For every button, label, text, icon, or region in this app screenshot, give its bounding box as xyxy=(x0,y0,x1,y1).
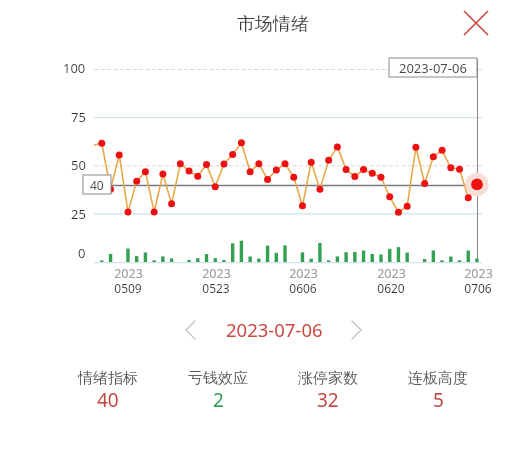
staticText: 2023 xyxy=(377,265,406,282)
button[interactable]: 2023-07-06 xyxy=(214,317,334,339)
button[interactable]: 连板高度 xyxy=(383,366,493,414)
staticText: 2023 xyxy=(114,265,143,282)
staticText: 0706 xyxy=(464,280,492,296)
staticText: 2023 xyxy=(202,265,231,282)
staticText: 2023-07-06 xyxy=(399,59,467,77)
staticText: 情绪指标 xyxy=(78,369,138,387)
button[interactable]: 市场情绪 xyxy=(213,13,333,33)
staticText: 100 xyxy=(63,59,86,77)
staticText: 50 xyxy=(71,156,86,174)
button[interactable]: 情绪指标 xyxy=(53,366,163,414)
staticText: 5 xyxy=(433,387,444,409)
staticText: 0620 xyxy=(377,280,405,296)
staticText: 2023-07-06 xyxy=(226,317,323,339)
staticText: 亏钱效应 xyxy=(188,369,248,387)
staticText: 0509 xyxy=(114,280,142,296)
staticText: 32 xyxy=(317,387,339,409)
staticText: 40 xyxy=(97,387,119,409)
staticText: 2023 xyxy=(289,265,318,282)
button[interactable]: 亏钱效应 xyxy=(163,366,273,414)
staticText: 2023 xyxy=(464,265,493,282)
button[interactable]: Next day xyxy=(341,315,371,345)
button[interactable]: Previous day xyxy=(175,315,205,345)
staticText: 涨停家数 xyxy=(298,369,358,387)
staticText: 75 xyxy=(71,108,86,126)
staticText: 市场情绪 xyxy=(237,13,309,33)
button[interactable]: Close xyxy=(458,5,494,41)
staticText: 0523 xyxy=(202,280,230,296)
staticText: 25 xyxy=(71,205,86,223)
staticText: 0606 xyxy=(289,280,317,296)
staticText: 连板高度 xyxy=(408,369,468,387)
staticText: 2 xyxy=(213,387,224,409)
staticText: 0 xyxy=(78,244,86,262)
button[interactable]: 涨停家数 xyxy=(273,366,383,414)
staticText: 40 xyxy=(90,177,104,193)
